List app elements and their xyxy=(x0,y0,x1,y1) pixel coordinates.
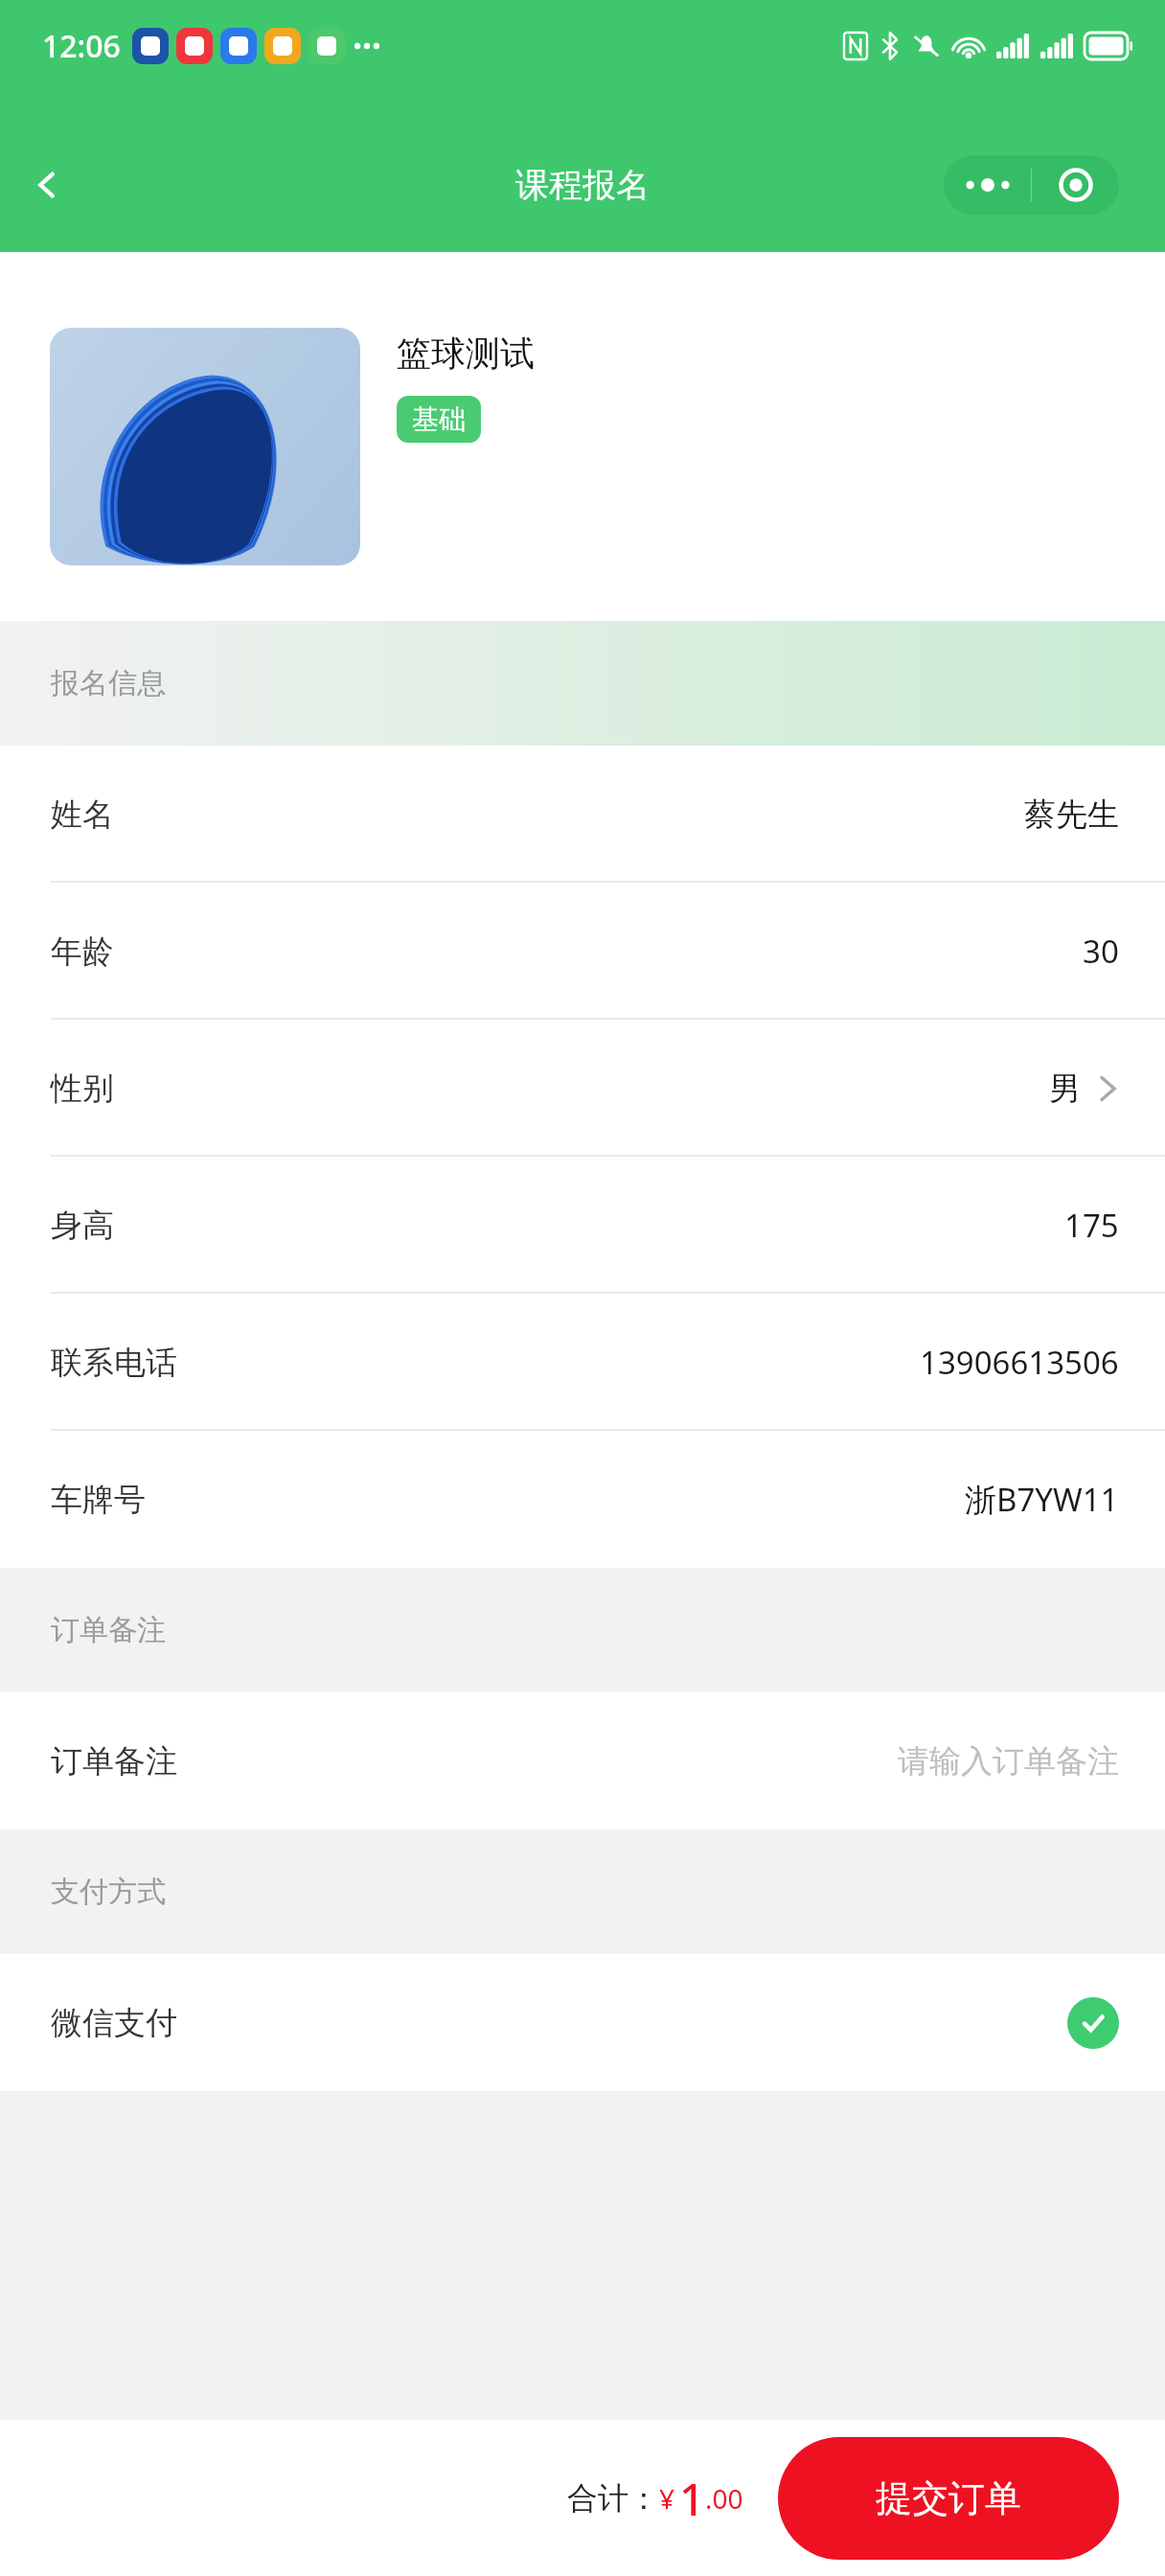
staticText: 报名信息 xyxy=(51,665,166,701)
staticText: 性别 xyxy=(51,1069,114,1109)
other: 已选择 xyxy=(1067,1997,1119,2049)
staticText: ¥ xyxy=(659,2480,675,2517)
button[interactable]: 车牌号 xyxy=(0,1431,1165,1568)
staticText: 车牌号 xyxy=(51,1480,146,1520)
staticText: .00 xyxy=(705,2480,743,2517)
staticText: 男 xyxy=(1049,1069,1081,1109)
staticText: 12:06 xyxy=(42,25,121,67)
button[interactable]: 返回 xyxy=(13,150,82,219)
staticText: 13906613506 xyxy=(920,1341,1119,1384)
staticText: 蔡先生 xyxy=(1024,794,1119,835)
staticText: 30 xyxy=(1083,930,1119,973)
staticText: 订单备注 xyxy=(51,1612,166,1648)
button[interactable]: 微信支付 xyxy=(0,1954,1165,2091)
button[interactable]: 年龄 xyxy=(0,883,1165,1020)
staticText: 联系电话 xyxy=(51,1343,177,1383)
staticText: 基础 xyxy=(412,402,466,436)
button[interactable]: 提交订单 xyxy=(778,2437,1119,2560)
staticText: 请输入订单备注 xyxy=(898,1741,1119,1782)
staticText: 1 xyxy=(679,2469,705,2529)
staticText: 提交订单 xyxy=(876,2475,1021,2521)
staticText: 篮球测试 xyxy=(397,332,535,375)
button[interactable]: 菜单 xyxy=(944,155,1119,215)
button[interactable]: 身高 xyxy=(0,1157,1165,1294)
button[interactable]: 姓名 xyxy=(0,746,1165,883)
button[interactable]: 性别 xyxy=(0,1020,1165,1157)
staticText: 姓名 xyxy=(51,794,114,835)
staticText: 浙B7YW11 xyxy=(965,1478,1119,1521)
staticText: 微信支付 xyxy=(51,2003,177,2043)
staticText: 课程报名 xyxy=(515,164,650,206)
staticText: 175 xyxy=(1064,1204,1119,1247)
staticText: 年龄 xyxy=(51,931,114,972)
staticText: 支付方式 xyxy=(51,1874,166,1910)
button[interactable]: 联系电话 xyxy=(0,1294,1165,1431)
staticText: 合计： xyxy=(567,2479,659,2518)
staticText: 身高 xyxy=(51,1206,114,1246)
button[interactable]: 订单备注 xyxy=(0,1692,1165,1829)
staticText: 订单备注 xyxy=(51,1741,177,1782)
